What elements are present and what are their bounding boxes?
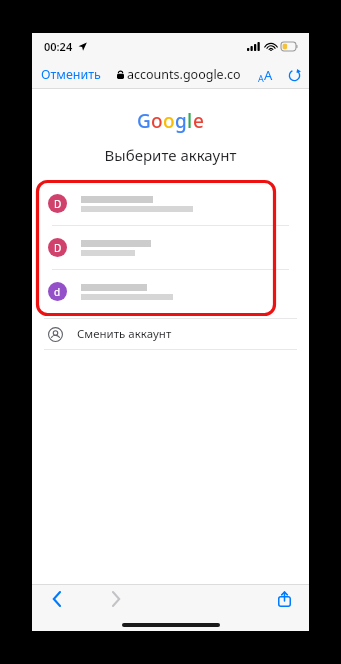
staticText: g (175, 108, 187, 134)
staticText: o (163, 108, 175, 134)
staticText: e (193, 108, 204, 134)
staticText: A (264, 66, 273, 84)
button[interactable]: D (40, 226, 301, 269)
staticText: d (54, 285, 61, 299)
button[interactable]: Back (46, 588, 68, 610)
staticText: D (54, 197, 62, 211)
button[interactable]: Сменить аккаунт (40, 319, 301, 349)
button[interactable]: d (40, 270, 301, 313)
button[interactable]: Forward (105, 588, 127, 610)
button[interactable]: Text size (256, 66, 275, 84)
staticText: Сменить аккаунт (77, 326, 172, 342)
button[interactable]: D (40, 182, 301, 225)
staticText: Отменить (41, 66, 101, 83)
staticText: l (187, 108, 193, 134)
staticText: accounts.google.co (127, 66, 241, 83)
staticText: Выберите аккаунт (32, 145, 309, 165)
button[interactable]: Reload (286, 67, 302, 83)
staticText: D (54, 241, 62, 255)
staticText: o (151, 108, 163, 134)
button[interactable]: Отменить (39, 64, 103, 85)
staticText: 00:24 (44, 39, 73, 54)
staticText: G (137, 108, 151, 134)
button[interactable]: Share (273, 588, 295, 610)
staticText: A (258, 72, 264, 84)
